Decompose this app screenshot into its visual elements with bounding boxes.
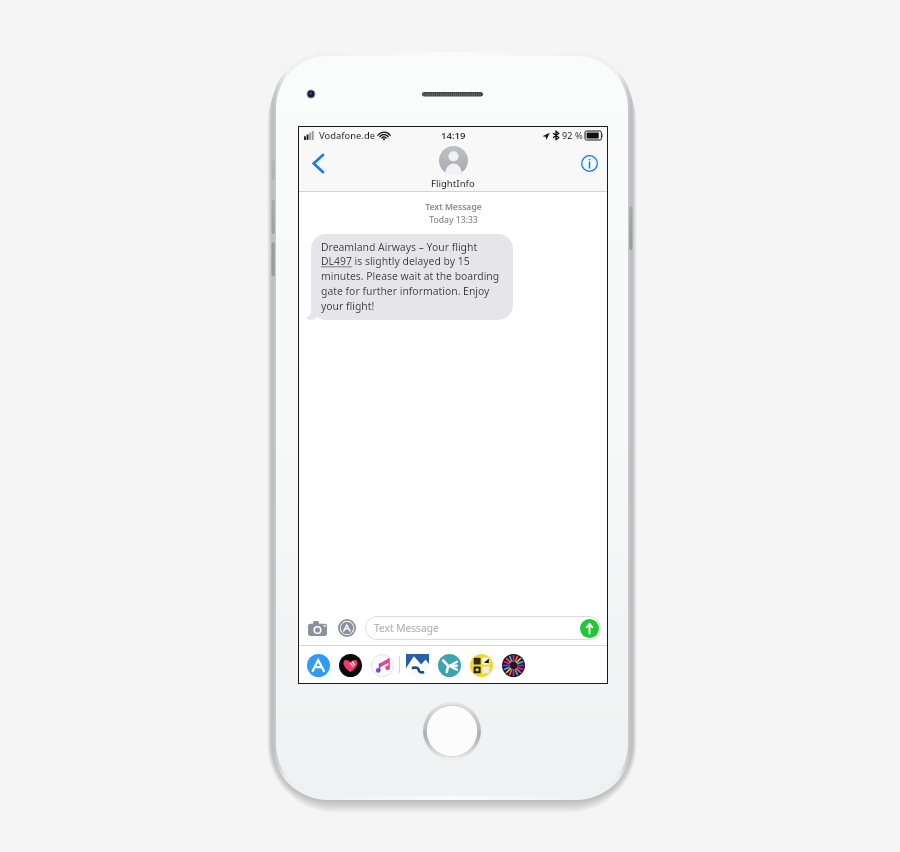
staticText: Text Message	[374, 621, 439, 635]
button[interactable]: Details	[578, 152, 600, 174]
button[interactable]: FlightInfo	[431, 146, 475, 190]
staticText: Dreamland Airways – Your flight DL497 is…	[321, 240, 503, 314]
button[interactable]: Back	[305, 150, 331, 176]
button[interactable]: Yammer	[437, 653, 461, 677]
staticText: FlightInfo	[431, 177, 475, 190]
staticText: 92 %	[562, 129, 583, 142]
button[interactable]: Photos app	[405, 653, 429, 677]
button[interactable]: Send	[579, 618, 599, 638]
button[interactable]: App Store	[335, 616, 359, 640]
staticText: Today 13:33	[429, 214, 478, 226]
button[interactable]: Effects app	[501, 653, 525, 677]
button[interactable]: Dreamland Airways – Your flight DL497 is…	[311, 234, 513, 320]
staticText: Vodafone.de	[319, 129, 376, 142]
button[interactable]: Favorites	[338, 653, 362, 677]
button[interactable]: Collage app	[469, 653, 493, 677]
button[interactable]: Camera	[305, 616, 329, 640]
button[interactable]: Text Message	[365, 616, 601, 640]
staticText: 14:19	[441, 129, 466, 142]
staticText: Text Message	[425, 201, 482, 213]
button[interactable]: Music	[370, 653, 394, 677]
button[interactable]: App Store	[306, 653, 330, 677]
